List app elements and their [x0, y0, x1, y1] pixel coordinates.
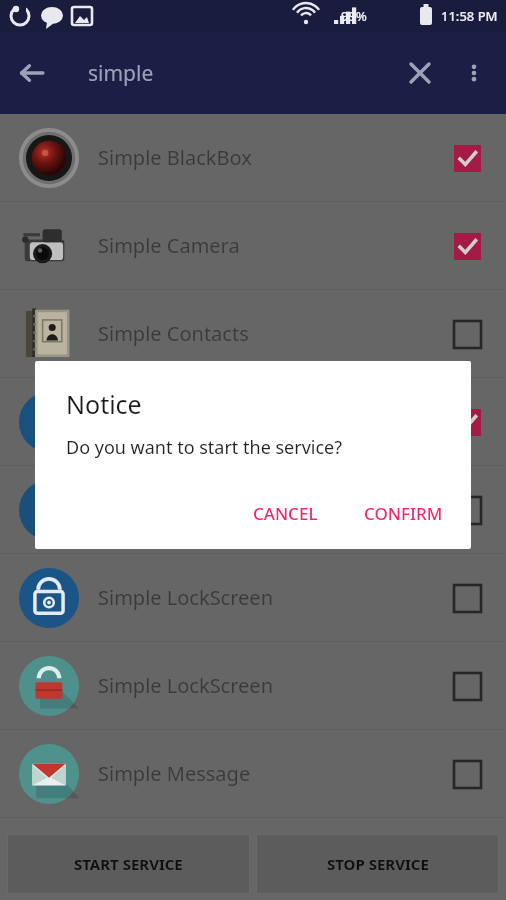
staticText: Simple Contacts [98, 320, 443, 347]
button[interactable]: Selected [443, 398, 491, 446]
button[interactable]: Simple Draw [0, 466, 506, 553]
staticText: Notice [66, 387, 142, 421]
staticText: STOP SERVICE [327, 854, 429, 874]
button[interactable]: Simple LockScreen [0, 554, 506, 641]
button[interactable]: More options [450, 49, 498, 97]
button[interactable]: Simple Dialer [0, 378, 506, 465]
button[interactable]: Simple Contacts [0, 290, 506, 377]
staticText: Do you want to start the service? [66, 435, 343, 460]
button[interactable]: Not selected [443, 574, 491, 622]
button[interactable]: Simple Camera [0, 202, 506, 289]
button[interactable]: Not selected [443, 662, 491, 710]
button[interactable]: CONFIRM [350, 492, 457, 535]
staticText: START SERVICE [74, 854, 183, 874]
button[interactable]: START SERVICE [8, 835, 249, 893]
button[interactable]: Not selected [443, 486, 491, 534]
button[interactable]: Back [8, 49, 56, 97]
button[interactable]: Selected [443, 222, 491, 270]
button[interactable]: Simple Message [0, 730, 506, 817]
staticText: 11:58 PM [441, 7, 498, 25]
staticText: Simple Camera [98, 232, 443, 259]
button[interactable]: Simple LockScreen [0, 642, 506, 729]
staticText: Simple Message [98, 760, 443, 787]
staticText: Simple Dialer [98, 408, 443, 435]
staticText: 99% [341, 7, 367, 25]
button[interactable]: Clear search [396, 49, 444, 97]
staticText: CANCEL [253, 502, 318, 525]
button[interactable]: Not selected [443, 310, 491, 358]
staticText: Simple BlackBox [98, 144, 443, 171]
button[interactable]: Not selected [443, 750, 491, 798]
button[interactable]: CANCEL [239, 492, 332, 535]
button[interactable]: STOP SERVICE [257, 835, 498, 893]
staticText: CONFIRM [364, 502, 443, 525]
staticText: simple [88, 59, 154, 88]
button[interactable]: Selected [443, 134, 491, 182]
staticText: Simple LockScreen [98, 672, 443, 699]
staticText: Simple LockScreen [98, 584, 443, 611]
button[interactable]: Simple BlackBox [0, 114, 506, 201]
staticText: Simple Draw [98, 496, 443, 523]
